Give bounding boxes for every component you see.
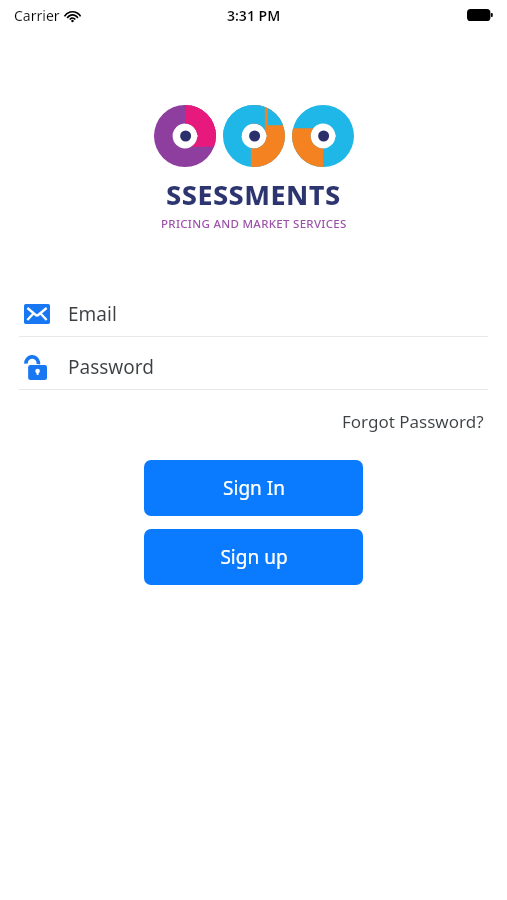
button[interactable]: Password bbox=[0, 345, 507, 389]
staticText: Email bbox=[68, 301, 117, 327]
other: Email bbox=[24, 304, 50, 324]
staticText: Carrier bbox=[14, 6, 60, 25]
staticText: Password bbox=[68, 354, 154, 380]
staticText: Sign In bbox=[223, 475, 285, 501]
staticText: Forgot Password? bbox=[342, 410, 484, 433]
staticText: Sign up bbox=[220, 544, 288, 570]
staticText: PRICING AND MARKET SERVICES bbox=[161, 216, 347, 232]
staticText: 3:31 PM bbox=[227, 6, 281, 25]
button[interactable]: Email bbox=[0, 292, 507, 336]
staticText: SSESSMENTS bbox=[166, 176, 341, 213]
button[interactable]: Sign In bbox=[144, 460, 363, 516]
button[interactable]: Sign up bbox=[144, 529, 363, 585]
button[interactable]: Forgot Password? bbox=[332, 406, 507, 437]
other: Password bbox=[24, 354, 47, 380]
